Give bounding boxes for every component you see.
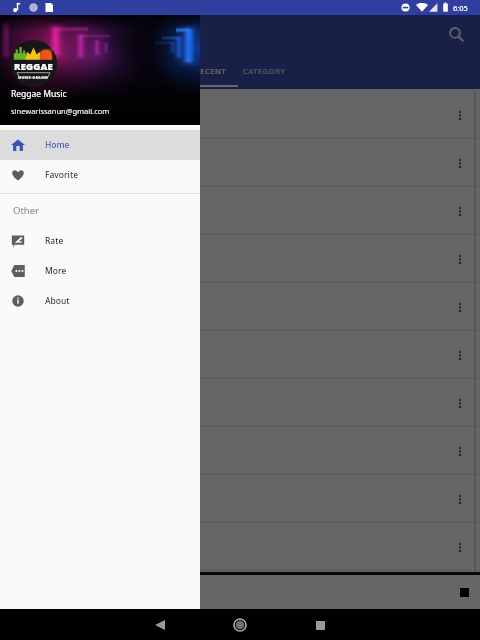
button[interactable]: More options <box>447 246 473 272</box>
button[interactable]: More options <box>0 235 480 282</box>
button[interactable]: More options <box>0 523 480 570</box>
button[interactable]: More options <box>0 283 480 330</box>
button[interactable]: CATEGORY <box>238 55 290 87</box>
staticText: More <box>45 265 67 277</box>
button[interactable]: More options <box>447 438 473 464</box>
button[interactable]: Search <box>444 22 468 46</box>
button[interactable]: More options <box>0 139 480 186</box>
button[interactable]: More options <box>447 342 473 368</box>
button[interactable]: More options <box>447 534 473 560</box>
staticText: sinewarissanun@gmail.com <box>11 106 110 116</box>
button[interactable]: Back <box>146 611 174 639</box>
button[interactable]: More options <box>447 390 473 416</box>
button[interactable]: More options <box>447 102 473 128</box>
staticText: Rate <box>45 235 64 247</box>
button[interactable]: More <box>0 256 200 286</box>
button[interactable]: More options <box>0 427 480 474</box>
staticText: 6:05 <box>453 3 468 13</box>
button[interactable]: About <box>0 286 200 316</box>
staticText: MUSIC ONLINE <box>18 75 49 80</box>
button[interactable]: More options <box>447 294 473 320</box>
button[interactable]: Home <box>0 130 200 160</box>
staticText: About <box>45 295 70 307</box>
staticText: RECENT <box>195 66 227 76</box>
button[interactable]: Favorite <box>0 160 200 190</box>
button[interactable]: RECENT <box>184 55 238 87</box>
button[interactable]: More options <box>0 187 480 234</box>
button[interactable]: Recents <box>306 611 334 639</box>
button[interactable]: Home <box>226 611 254 639</box>
staticText: Favorite <box>45 169 79 181</box>
button[interactable]: More options <box>447 486 473 512</box>
button[interactable]: More options <box>447 150 473 176</box>
staticText: REGGAE <box>14 60 54 73</box>
button[interactable]: More options <box>447 198 473 224</box>
button[interactable]: Rate <box>0 226 200 256</box>
button[interactable]: More options <box>0 91 480 138</box>
button[interactable]: More options <box>0 379 480 426</box>
staticText: Home <box>45 139 70 151</box>
staticText: CATEGORY <box>243 66 286 76</box>
button[interactable]: More options <box>0 475 480 522</box>
button[interactable]: More options <box>0 331 480 378</box>
staticText: Reggae Music <box>11 88 67 100</box>
staticText: Other <box>13 204 40 217</box>
